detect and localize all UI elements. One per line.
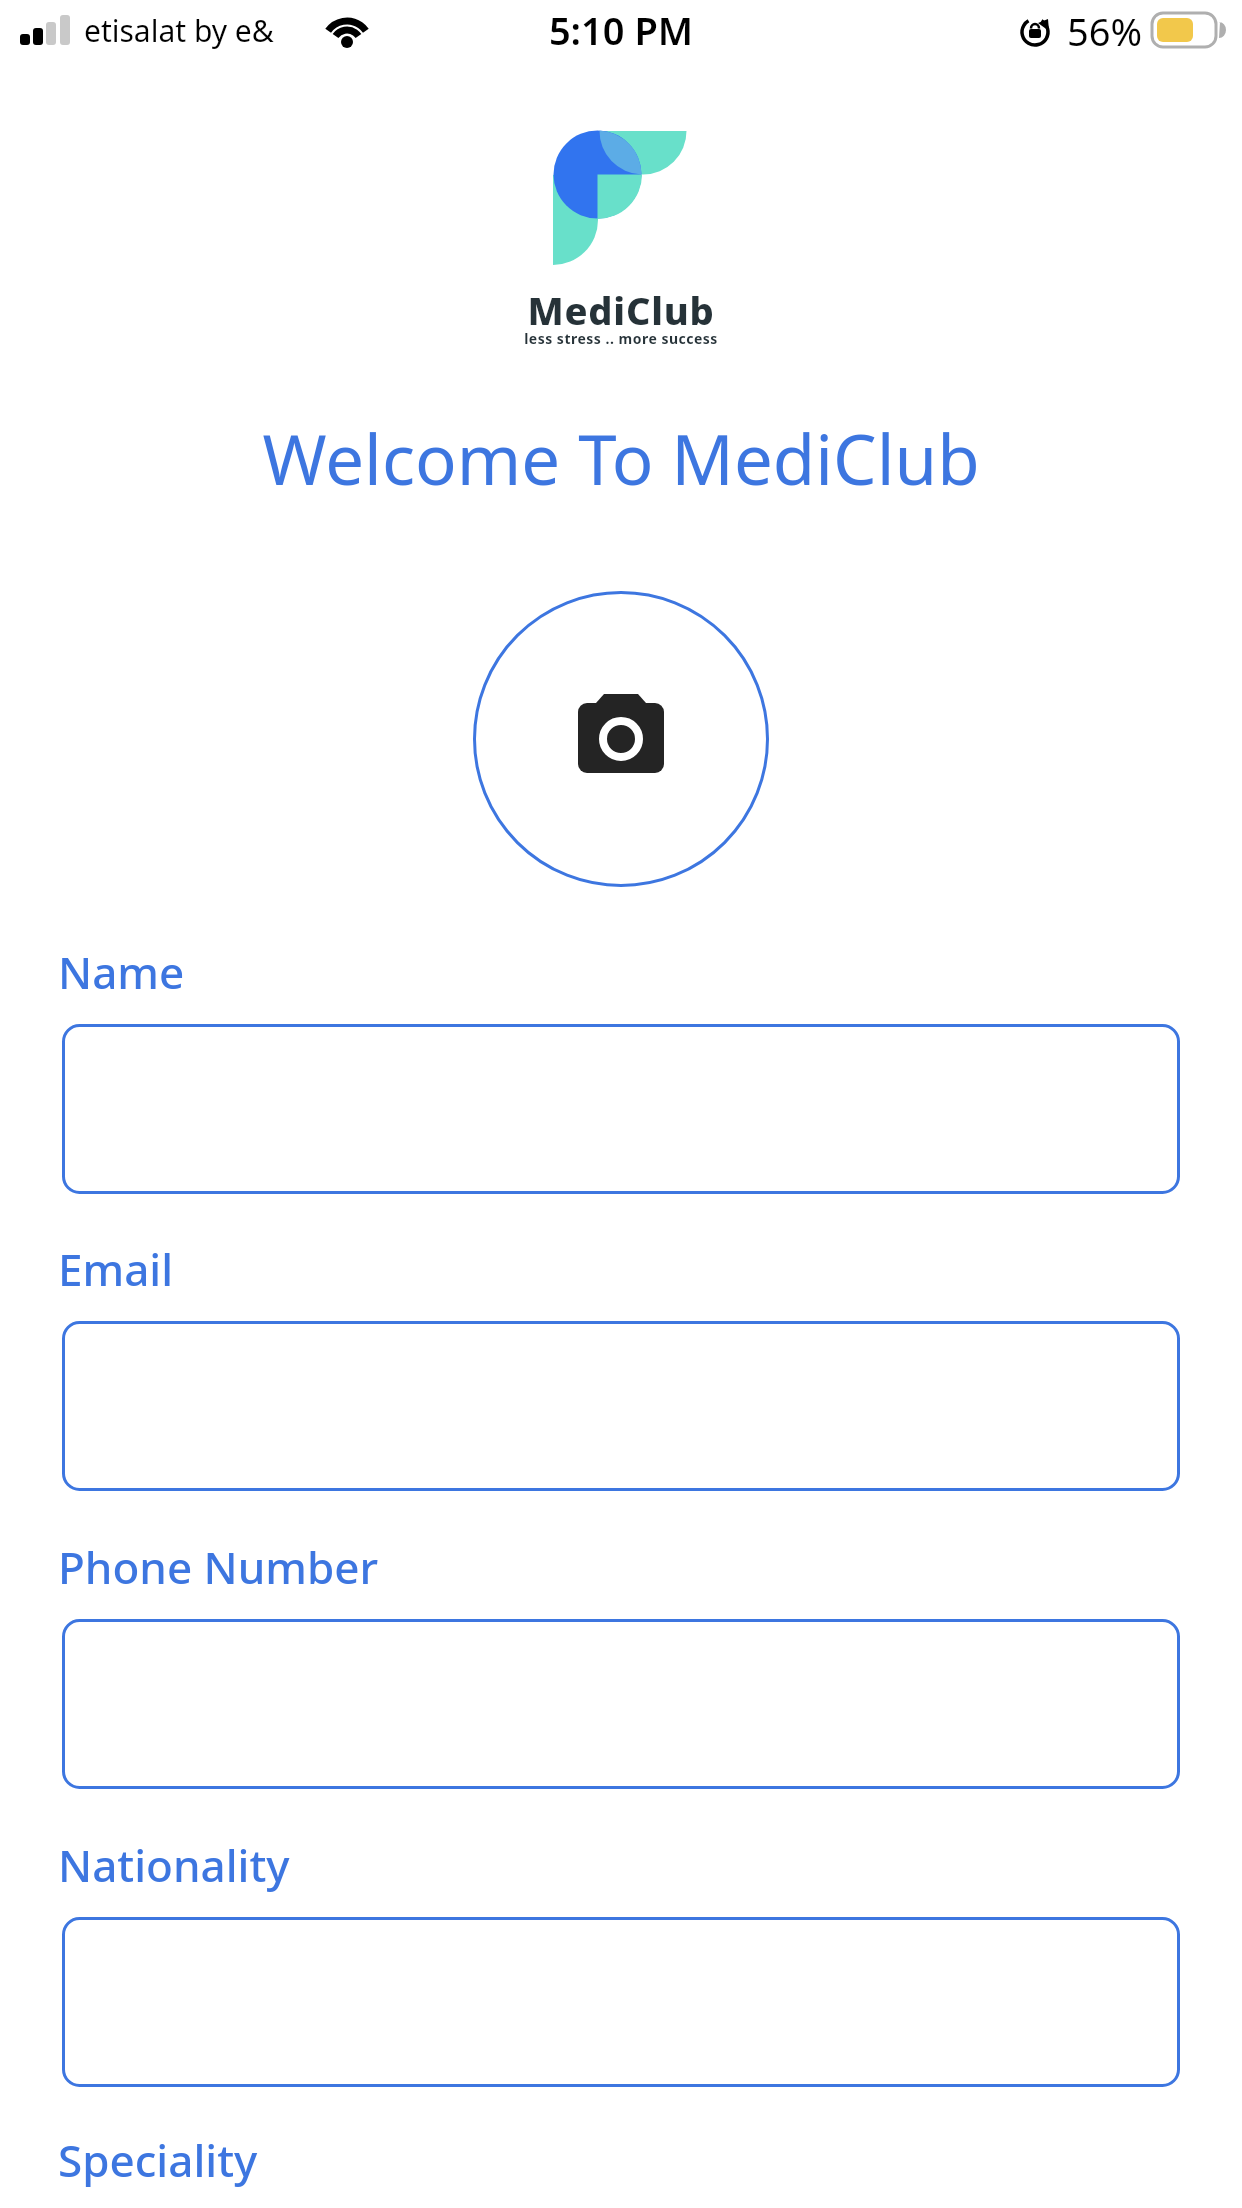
button[interactable]	[62, 1024, 1180, 1194]
button[interactable]	[473, 591, 769, 887]
staticText: Nationality	[58, 1835, 290, 1895]
button[interactable]	[62, 1917, 1180, 2087]
staticText: 5:10 PM	[0, 4, 1242, 56]
staticText: etisalat by e&	[84, 10, 274, 51]
staticText: 56%	[1067, 5, 1143, 57]
button[interactable]	[62, 1321, 1180, 1491]
staticText: Name	[58, 942, 185, 1002]
staticText: Phone Number	[58, 1537, 379, 1597]
staticText: less stress .. more success	[0, 329, 1242, 348]
button[interactable]	[62, 1619, 1180, 1789]
staticText: Speciality	[58, 2130, 258, 2190]
staticText: Email	[58, 1239, 174, 1299]
staticText: MediClub	[0, 284, 1242, 336]
staticText: Welcome To MediClub	[0, 411, 1242, 505]
